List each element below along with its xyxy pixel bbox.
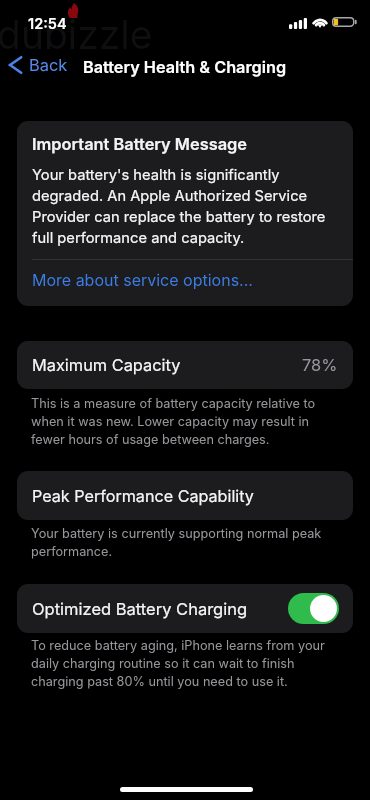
- staticText: To reduce battery aging, iPhone learns f…: [31, 638, 341, 689]
- staticText: Important Battery Message: [32, 134, 248, 154]
- staticText: Your battery is currently supporting nor…: [31, 526, 341, 559]
- button[interactable]: Back: [2, 50, 74, 84]
- button[interactable]: Maximum Capacity: [17, 341, 353, 389]
- staticText: This is a measure of battery capacity re…: [31, 396, 341, 447]
- staticText: dubizzle: [0, 11, 153, 58]
- staticText: Your battery's health is significantly d…: [32, 166, 340, 246]
- button[interactable]: Optimized Battery Charging toggle, on: [288, 593, 339, 624]
- staticText: Peak Performance Capability: [32, 486, 254, 506]
- button[interactable]: Peak Performance Capability: [17, 471, 353, 520]
- staticText: More about service options...: [32, 270, 253, 289]
- staticText: Optimized Battery Charging: [32, 599, 248, 619]
- staticText: 12:54: [28, 15, 67, 33]
- button[interactable]: More about service options...: [17, 258, 353, 306]
- staticText: 78%: [302, 355, 338, 375]
- staticText: Battery Health & Charging: [83, 57, 287, 77]
- staticText: Back: [29, 55, 68, 75]
- staticText: Maximum Capacity: [32, 355, 181, 375]
